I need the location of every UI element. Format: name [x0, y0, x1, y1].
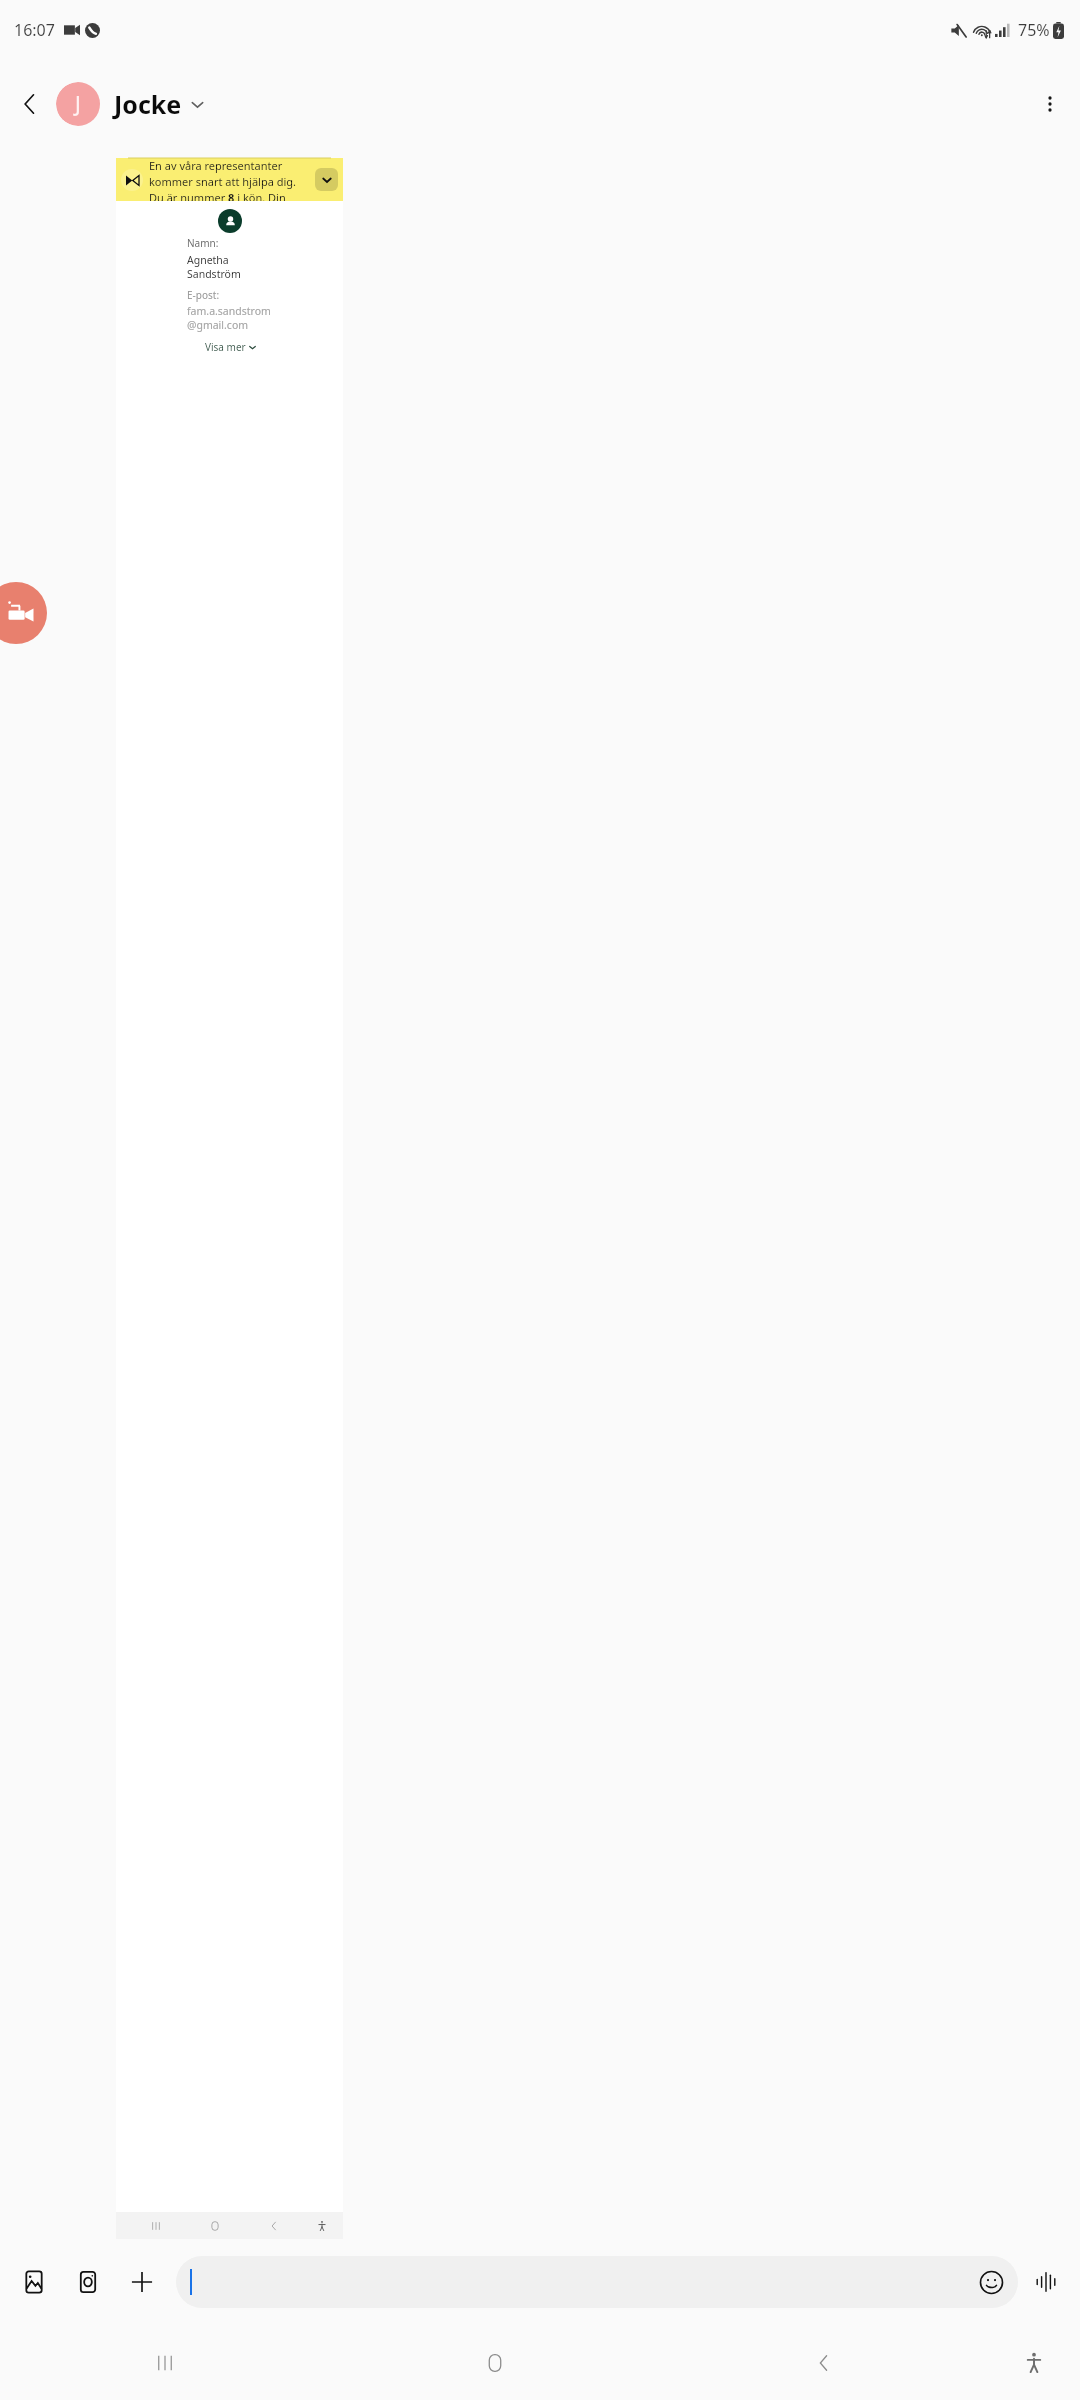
staticText: fam.a.sandstrom@gmail.com [187, 304, 273, 332]
button[interactable]: Emoji [176, 2256, 1018, 2308]
button[interactable]: Back [659, 2325, 988, 2400]
button[interactable]: Visa mer [187, 340, 273, 354]
button[interactable]: Voice message [1022, 2258, 1070, 2306]
button[interactable]: Home [330, 2325, 659, 2400]
button[interactable]: Back [6, 80, 54, 128]
button[interactable]: Add attachment [118, 2258, 166, 2306]
button[interactable]: Gallery [10, 2258, 58, 2306]
button[interactable]: Camera [64, 2258, 112, 2306]
staticText: 16:07 [14, 19, 55, 41]
staticText: E-post: [187, 288, 220, 302]
staticText: 75% [1018, 19, 1050, 41]
staticText: Visa mer [205, 340, 246, 354]
staticText: Jocke [114, 87, 182, 121]
button[interactable]: Accessibility [988, 2325, 1080, 2400]
button[interactable]: Expand [315, 168, 338, 191]
button[interactable]: More options [1026, 80, 1074, 128]
staticText: Agnetha Sandström [187, 253, 273, 281]
staticText: En av våra representanter kommer snart a… [149, 158, 310, 201]
staticText: J [75, 90, 81, 119]
staticText: Namn: [187, 236, 219, 250]
button[interactable]: Recent apps [0, 2325, 330, 2400]
button[interactable]: Video call [0, 582, 47, 644]
button[interactable]: Emoji [974, 2265, 1008, 2299]
button[interactable]: J [56, 82, 210, 126]
